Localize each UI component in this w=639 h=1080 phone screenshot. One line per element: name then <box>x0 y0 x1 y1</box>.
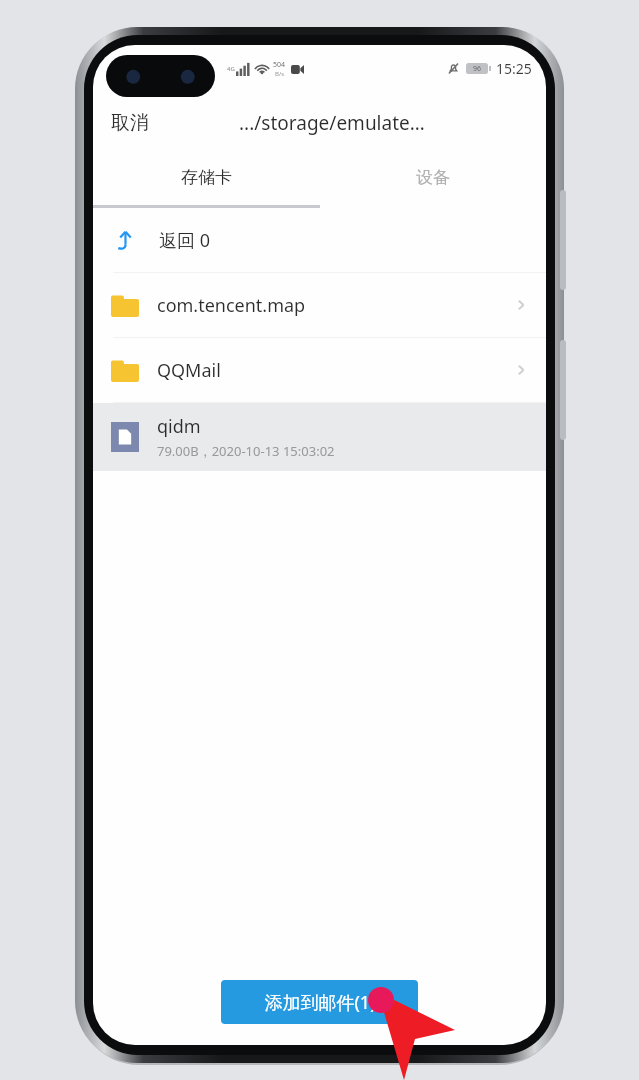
button[interactable]: 添加到邮件(1) <box>221 980 418 1024</box>
button[interactable]: com.tencent.map <box>93 273 546 337</box>
staticText: 15:25 <box>496 59 532 78</box>
button[interactable]: qidm <box>93 403 546 471</box>
staticText: 设备 <box>416 167 450 188</box>
staticText: 79.00B，2020-10-13 15:03:02 <box>157 442 335 460</box>
button[interactable]: 存储卡 <box>93 151 319 204</box>
staticText: 存储卡 <box>181 167 232 188</box>
button[interactable]: QQMail <box>93 338 546 402</box>
staticText: 返回 0 <box>159 228 210 253</box>
button[interactable]: 设备 <box>319 151 546 204</box>
staticText: QQMail <box>157 358 221 383</box>
staticText: 96 <box>473 64 482 74</box>
staticText: 504 <box>273 60 286 70</box>
staticText: .../storage/emulate… <box>239 110 425 136</box>
staticText: 4G <box>227 65 235 73</box>
button[interactable]: 返回 0 <box>93 208 546 272</box>
other: Open folder <box>512 296 530 314</box>
staticText: B/s <box>275 70 285 78</box>
staticText: qidm <box>157 414 201 439</box>
staticText: com.tencent.map <box>157 293 306 318</box>
staticText: 取消 <box>111 111 149 135</box>
staticText: 添加到邮件(1) <box>264 990 376 1015</box>
other: Open folder <box>512 361 530 379</box>
button[interactable]: 取消 <box>93 101 167 145</box>
